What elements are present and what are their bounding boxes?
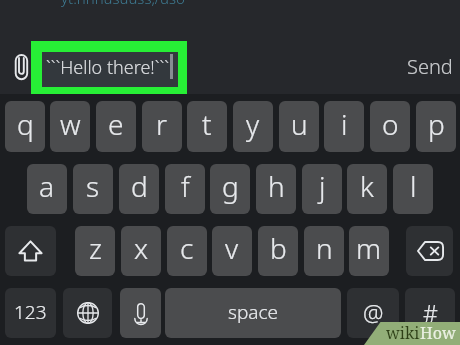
button[interactable]: 123 bbox=[5, 288, 56, 338]
button[interactable]: u bbox=[279, 101, 319, 152]
staticText: p bbox=[428, 105, 445, 143]
staticText: j bbox=[319, 167, 326, 205]
button[interactable]: x bbox=[121, 226, 161, 276]
staticText: c bbox=[180, 229, 194, 267]
button[interactable]: Shift bbox=[5, 226, 56, 276]
button[interactable]: i bbox=[324, 101, 364, 152]
button[interactable]: w bbox=[50, 101, 90, 152]
button[interactable]: g bbox=[210, 164, 250, 214]
button[interactable]: z bbox=[75, 226, 115, 276]
button[interactable]: Attach file bbox=[10, 50, 34, 84]
button[interactable]: Backspace bbox=[406, 226, 453, 276]
staticText: b bbox=[270, 229, 287, 267]
button[interactable]: h bbox=[256, 164, 296, 214]
button[interactable]: y bbox=[233, 101, 273, 152]
staticText: f bbox=[181, 167, 190, 205]
button[interactable]: e bbox=[96, 101, 136, 152]
button[interactable]: q bbox=[5, 101, 45, 152]
button[interactable]: m bbox=[349, 226, 389, 276]
staticText: yt.nnnusuuss,/uso bbox=[61, 0, 185, 8]
staticText: k bbox=[360, 167, 374, 205]
staticText: o bbox=[382, 105, 399, 143]
staticText: d bbox=[131, 167, 148, 205]
button[interactable]: ```Hello there!``` bbox=[42, 52, 178, 87]
staticText: # bbox=[423, 297, 438, 328]
staticText: e bbox=[108, 105, 124, 143]
staticText: g bbox=[222, 167, 239, 205]
button[interactable]: b bbox=[258, 226, 298, 276]
button[interactable]: k bbox=[347, 164, 387, 214]
staticText: t bbox=[202, 105, 212, 143]
staticText: n bbox=[316, 229, 333, 267]
button[interactable]: a bbox=[27, 164, 67, 214]
staticText: x bbox=[134, 229, 149, 267]
button[interactable]: n bbox=[304, 226, 344, 276]
staticText: u bbox=[291, 105, 308, 143]
button[interactable]: r bbox=[142, 101, 182, 152]
staticText: z bbox=[89, 229, 102, 267]
staticText: 123 bbox=[14, 299, 47, 325]
staticText: r bbox=[156, 105, 168, 143]
staticText: q bbox=[17, 105, 34, 143]
button[interactable]: d bbox=[119, 164, 159, 214]
button[interactable]: p bbox=[416, 101, 456, 152]
staticText: ```Hello there!``` bbox=[46, 55, 170, 80]
staticText: s bbox=[86, 167, 100, 205]
staticText: w bbox=[60, 105, 81, 143]
button[interactable]: j bbox=[302, 164, 342, 214]
staticText: h bbox=[268, 167, 285, 205]
button[interactable]: @ bbox=[347, 288, 399, 338]
staticText: v bbox=[225, 229, 239, 267]
button[interactable]: v bbox=[212, 226, 252, 276]
staticText: How bbox=[420, 322, 456, 344]
button[interactable]: Send bbox=[399, 41, 460, 94]
button[interactable]: Voice input bbox=[120, 288, 161, 338]
staticText: a bbox=[39, 167, 55, 205]
staticText: l bbox=[410, 167, 417, 205]
button[interactable]: s bbox=[73, 164, 113, 214]
button[interactable]: l bbox=[393, 164, 433, 214]
button[interactable]: space bbox=[165, 288, 341, 338]
staticText: space bbox=[228, 299, 278, 325]
staticText: y bbox=[246, 105, 260, 143]
staticText: m bbox=[356, 229, 382, 267]
button[interactable]: c bbox=[167, 226, 207, 276]
button[interactable]: t bbox=[187, 101, 227, 152]
button[interactable]: Change keyboard language bbox=[63, 288, 112, 338]
staticText: wiki bbox=[386, 322, 420, 344]
staticText: @ bbox=[363, 297, 384, 328]
button[interactable]: f bbox=[165, 164, 205, 214]
button[interactable]: o bbox=[370, 101, 410, 152]
button[interactable]: # bbox=[405, 288, 455, 338]
staticText: Send bbox=[407, 53, 453, 80]
staticText: i bbox=[341, 105, 348, 143]
